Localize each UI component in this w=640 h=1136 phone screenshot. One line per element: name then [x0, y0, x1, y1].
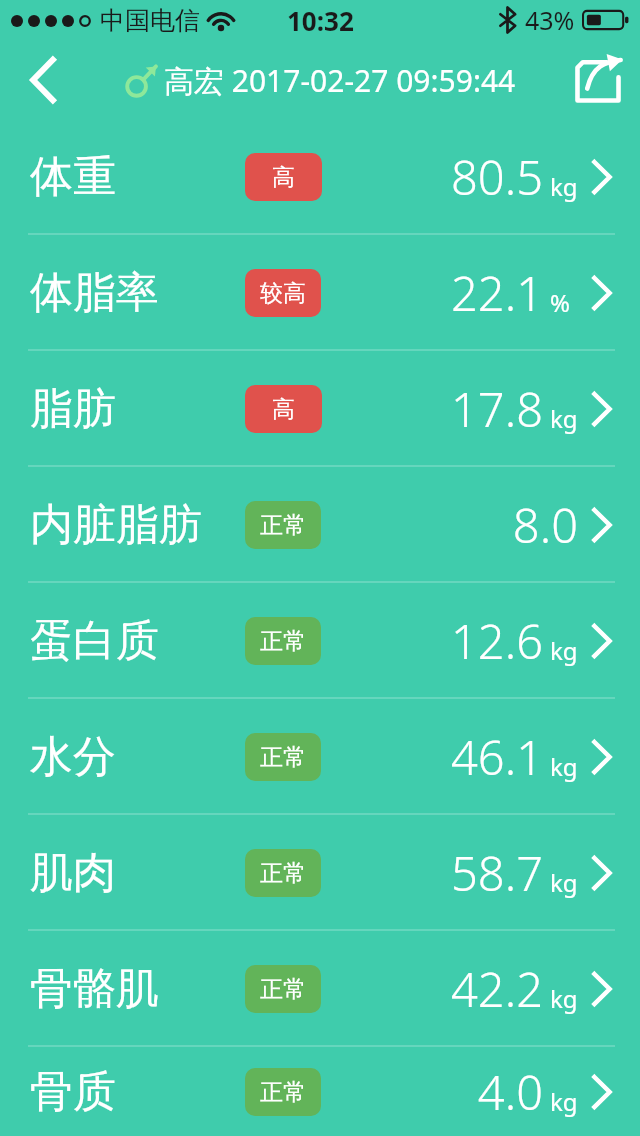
staticText: 80.5 [451, 145, 543, 209]
staticText: 蛋白质 [30, 614, 159, 668]
staticText: 10:32 [287, 3, 354, 38]
button[interactable]: 体脂率 [0, 236, 640, 349]
staticText: % [550, 286, 570, 319]
staticText: kg [550, 982, 578, 1015]
button[interactable]: 骨骼肌 [0, 932, 640, 1045]
staticText: 8.0 [512, 493, 578, 557]
staticText: 脂肪 [30, 382, 116, 436]
staticText: 4.0 [477, 1060, 543, 1124]
staticText: kg [550, 634, 578, 667]
staticText: 高 [272, 395, 295, 424]
staticText: 高 [272, 163, 295, 192]
staticText: 正常 [260, 627, 306, 656]
button[interactable]: 骨质 [0, 1048, 640, 1136]
staticText: 肌肉 [30, 846, 116, 900]
button[interactable]: 蛋白质 [0, 584, 640, 697]
staticText: 水分 [30, 730, 116, 784]
staticText: 46.1 [451, 725, 543, 789]
staticText: 正常 [260, 511, 306, 540]
staticText: 较高 [260, 279, 306, 308]
staticText: 骨骼肌 [30, 962, 159, 1016]
staticText: 58.7 [451, 841, 543, 905]
staticText: 正常 [260, 743, 306, 772]
staticText: kg [550, 402, 578, 435]
staticText: 正常 [260, 975, 306, 1004]
staticText: 中国电信 [100, 5, 200, 36]
staticText: 12.6 [451, 609, 543, 673]
staticText: 正常 [260, 859, 306, 888]
staticText: kg [550, 170, 578, 203]
staticText: 高宏 2017-02-27 09:59:44 [164, 60, 516, 101]
staticText: kg [550, 1085, 578, 1118]
staticText: kg [550, 750, 578, 783]
staticText: kg [550, 866, 578, 899]
staticText: 骨质 [30, 1065, 116, 1119]
button[interactable]: 肌肉 [0, 816, 640, 929]
staticText: 正常 [260, 1078, 306, 1107]
button[interactable]: 水分 [0, 700, 640, 813]
staticText: 体重 [30, 150, 116, 204]
button[interactable]: Share [556, 40, 640, 120]
staticText: 43% [525, 3, 575, 37]
staticText: 17.8 [451, 377, 543, 441]
button[interactable]: Back [0, 40, 86, 120]
staticText: 42.2 [451, 957, 543, 1021]
button[interactable]: 体重 [0, 120, 640, 233]
button[interactable]: 脂肪 [0, 352, 640, 465]
button[interactable]: 内脏脂肪 [0, 468, 640, 581]
staticText: 22.1 [451, 261, 543, 325]
staticText: 体脂率 [30, 266, 159, 320]
staticText: 内脏脂肪 [30, 498, 202, 552]
